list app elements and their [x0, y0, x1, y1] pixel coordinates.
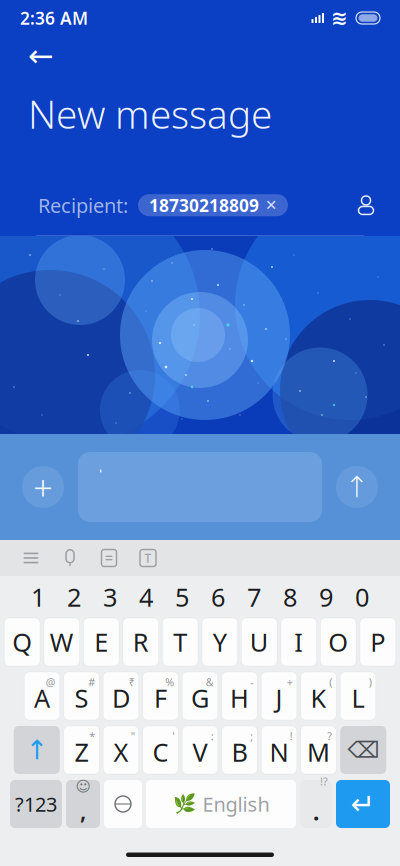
staticText: V: [192, 735, 207, 769]
button[interactable]: Return: [336, 780, 390, 828]
button[interactable]: ": [103, 726, 139, 774]
staticText: H: [230, 681, 249, 715]
staticText: U: [250, 625, 269, 659]
button[interactable]: O: [320, 618, 356, 666]
button[interactable]: 8: [272, 578, 308, 616]
button[interactable]: @: [24, 672, 60, 720]
staticText: ₹: [129, 675, 135, 689]
staticText: ↵: [350, 787, 375, 821]
staticText: I: [294, 625, 303, 659]
staticText: B: [231, 735, 247, 769]
button[interactable]: 1: [20, 578, 56, 616]
staticText: A: [34, 681, 50, 715]
button[interactable]: ?123: [10, 780, 62, 828]
button[interactable]: P: [360, 618, 395, 666]
staticText: F: [154, 681, 167, 715]
button[interactable]: ;: [222, 726, 257, 774]
button[interactable]: Send: [336, 466, 378, 508]
button[interactable]: Add attachment: [22, 466, 64, 508]
button[interactable]: Switch language: [104, 780, 142, 828]
staticText: .: [313, 796, 319, 827]
button[interactable]: ₹: [103, 672, 139, 720]
button[interactable]: Comma and emoji: [66, 780, 100, 828]
staticText: 3: [103, 580, 117, 614]
button[interactable]: Choose contact: [344, 185, 388, 225]
button[interactable]: Clipboard: [91, 543, 127, 573]
button[interactable]: E: [83, 618, 119, 666]
staticText: W: [50, 625, 74, 659]
staticText: ,: [80, 796, 86, 826]
staticText: &: [206, 675, 214, 689]
button[interactable]: 2: [56, 578, 92, 616]
button[interactable]: ?: [301, 726, 336, 774]
button[interactable]: Period: [300, 780, 332, 828]
button[interactable]: Keyboard settings: [13, 543, 49, 573]
staticText: ': [172, 729, 174, 743]
button[interactable]: -: [222, 672, 257, 720]
button[interactable]: 6: [200, 578, 236, 616]
button[interactable]: 18730218809: [138, 194, 288, 216]
staticText: ?: [327, 729, 332, 743]
button[interactable]: 4: [128, 578, 164, 616]
staticText: %: [165, 675, 174, 689]
button[interactable]: Voice input: [52, 543, 88, 573]
staticText: ✕: [265, 197, 277, 213]
button[interactable]: Space: [146, 780, 296, 828]
staticText: 4: [139, 580, 153, 614]
staticText: @: [46, 675, 56, 689]
staticText: X: [113, 735, 128, 769]
staticText: ;: [250, 729, 253, 743]
button[interactable]: R: [123, 618, 158, 666]
staticText: M: [307, 735, 330, 769]
staticText: ☺: [75, 778, 90, 795]
staticText: ?123: [15, 791, 57, 817]
staticText: 8: [283, 580, 297, 614]
button[interactable]: Text editing: [130, 543, 166, 573]
staticText: ≋: [331, 7, 348, 29]
staticText: (: [329, 675, 332, 689]
staticText: Q: [12, 625, 32, 659]
button[interactable]: W: [44, 618, 79, 666]
button[interactable]: ): [340, 672, 376, 720]
button[interactable]: Back: [0, 36, 72, 76]
staticText: D: [112, 681, 130, 715]
button[interactable]: 5: [164, 578, 200, 616]
button[interactable]: I: [281, 618, 316, 666]
button[interactable]: U: [241, 618, 277, 666]
button[interactable]: Q: [4, 618, 40, 666]
staticText: +: [287, 675, 293, 689]
staticText: Z: [74, 735, 88, 769]
staticText: *: [89, 729, 95, 743]
button[interactable]: %: [143, 672, 178, 720]
staticText: 🌿: [172, 793, 195, 815]
button[interactable]: Y: [202, 618, 237, 666]
button[interactable]: #: [64, 672, 99, 720]
staticText: J: [275, 681, 282, 715]
button[interactable]: 9: [308, 578, 344, 616]
staticText: ): [369, 675, 372, 689]
staticText: Y: [213, 625, 227, 659]
button[interactable]: 3: [92, 578, 128, 616]
staticText: 18730218809: [149, 194, 259, 217]
button[interactable]: *: [64, 726, 99, 774]
staticText: N: [269, 735, 288, 769]
staticText: #: [88, 675, 95, 689]
staticText: E: [94, 625, 108, 659]
button[interactable]: Backspace: [340, 726, 386, 774]
button[interactable]: &: [182, 672, 218, 720]
button[interactable]: +: [261, 672, 297, 720]
button[interactable]: :: [182, 726, 218, 774]
button[interactable]: Shift: [14, 726, 60, 774]
staticText: :: [211, 729, 214, 743]
staticText: R: [133, 625, 149, 659]
staticText: Recipient:: [38, 192, 128, 218]
button[interactable]: 7: [236, 578, 272, 616]
button[interactable]: T: [162, 618, 198, 666]
staticText: L: [351, 681, 364, 715]
button[interactable]: ': [143, 726, 178, 774]
button[interactable]: !: [261, 726, 297, 774]
button[interactable]: 0: [344, 578, 380, 616]
button[interactable]: (: [301, 672, 336, 720]
staticText: !?: [320, 774, 328, 789]
